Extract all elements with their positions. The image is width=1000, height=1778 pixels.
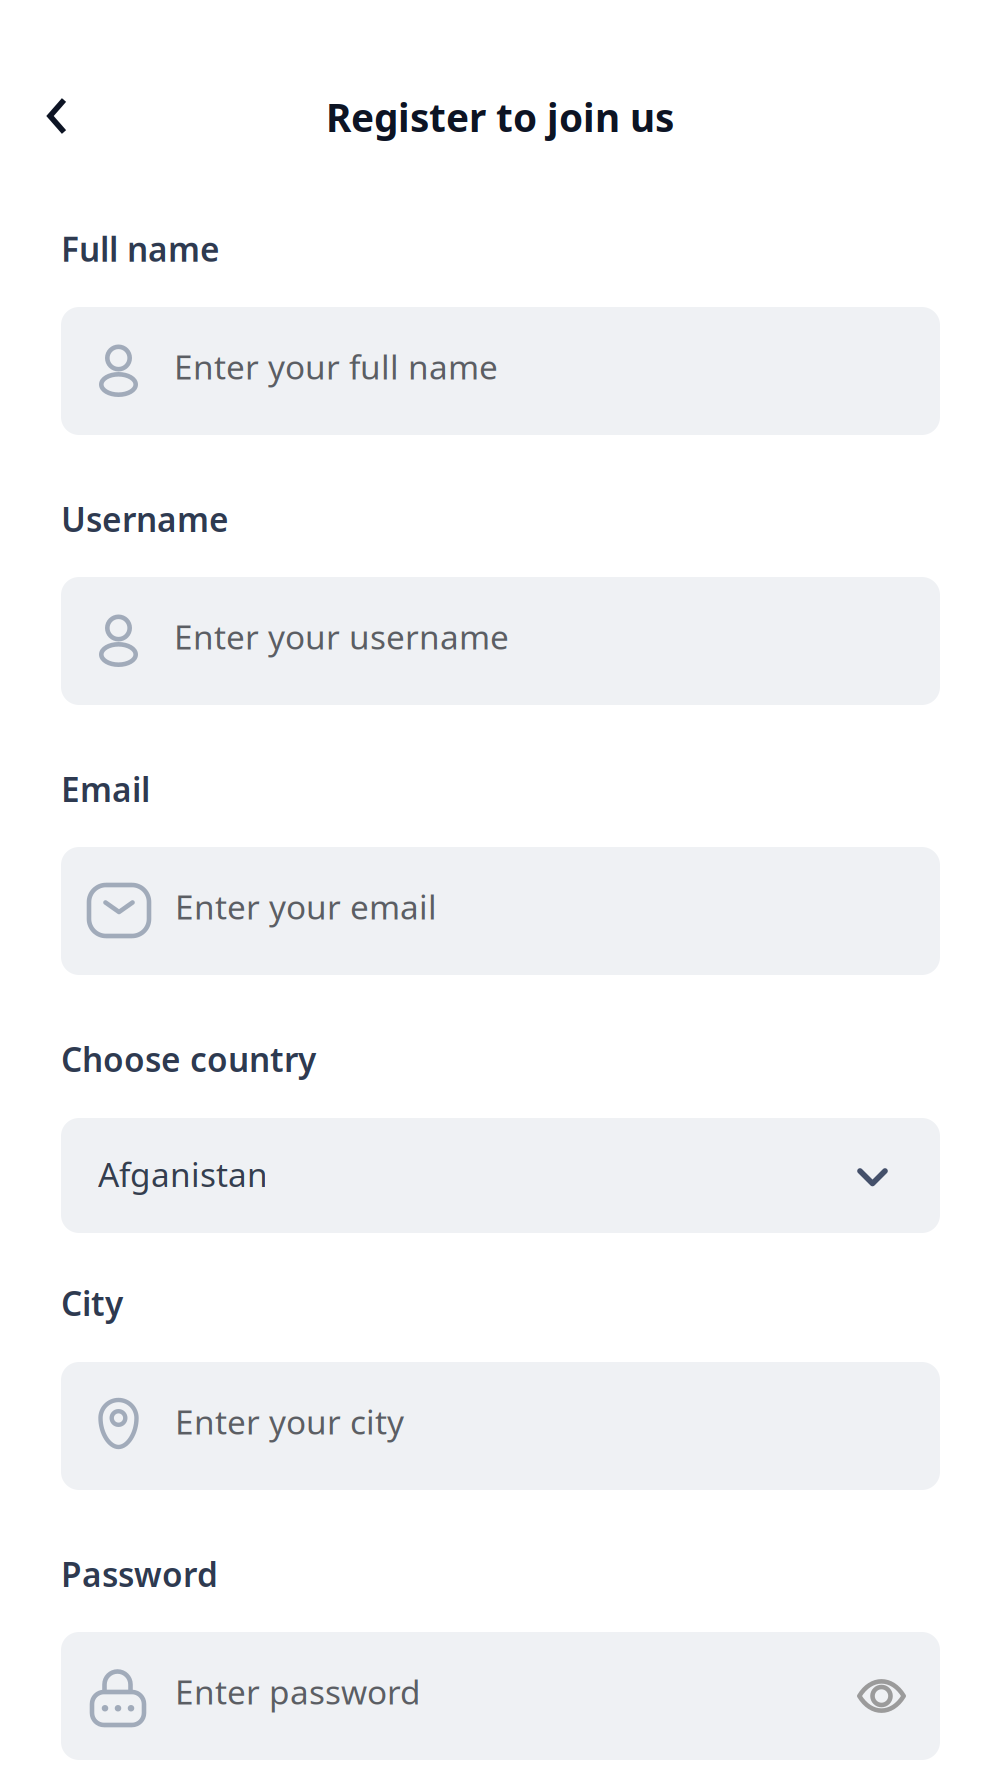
button[interactable]: Enter your city xyxy=(61,1362,940,1490)
button[interactable]: Back xyxy=(34,93,80,139)
button[interactable]: Enter your username xyxy=(61,577,940,705)
staticText: Password xyxy=(61,1552,218,1596)
staticText: Enter password xyxy=(175,1669,421,1714)
staticText: Enter your full name xyxy=(174,344,498,389)
button[interactable]: Afganistan xyxy=(61,1118,940,1233)
button[interactable]: Show password xyxy=(845,1660,917,1732)
staticText: Enter your email xyxy=(175,884,437,929)
button[interactable]: Enter your full name xyxy=(61,307,940,435)
staticText: Email xyxy=(61,767,150,811)
staticText: Register to join us xyxy=(326,91,674,142)
button[interactable]: Enter your email xyxy=(61,847,940,975)
staticText: City xyxy=(61,1281,123,1325)
button[interactable]: Enter password xyxy=(61,1632,940,1760)
staticText: Afganistan xyxy=(98,1152,268,1196)
staticText: Choose country xyxy=(61,1037,316,1081)
staticText: Enter your city xyxy=(175,1399,404,1444)
staticText: Full name xyxy=(61,227,220,271)
staticText: Enter your username xyxy=(174,614,509,659)
staticText: Username xyxy=(61,497,229,541)
